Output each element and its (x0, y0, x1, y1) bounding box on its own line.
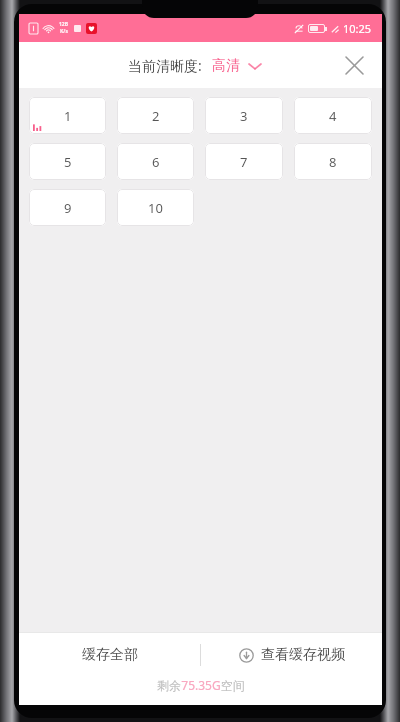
staticText: 查看缓存视频 (261, 646, 345, 664)
staticText: 高清 (212, 57, 240, 75)
staticText: 1 (64, 107, 72, 125)
button[interactable]: 1 (29, 97, 106, 134)
button[interactable]: 7 (205, 143, 283, 180)
staticText: 2 (152, 107, 160, 125)
button[interactable]: 4 (294, 97, 372, 134)
staticText: 5 (64, 153, 72, 171)
button[interactable]: 查看缓存视频 (201, 633, 382, 677)
button[interactable]: 5 (29, 143, 106, 180)
staticText: 缓存全部 (82, 646, 138, 664)
staticText: 6 (152, 153, 160, 171)
staticText: 当前清晰度: (128, 56, 202, 75)
button[interactable]: 缓存全部 (19, 633, 200, 677)
button[interactable]: 2 (117, 97, 194, 134)
button[interactable]: 当前清晰度: (122, 52, 267, 79)
staticText: 8 (329, 153, 337, 171)
button[interactable]: Close (334, 45, 374, 85)
button[interactable]: 8 (294, 143, 372, 180)
staticText: 10 (148, 199, 163, 217)
button[interactable]: 9 (29, 189, 106, 226)
staticText: 4 (329, 107, 337, 125)
button[interactable]: 3 (205, 97, 283, 134)
staticText: 10:25 (343, 21, 372, 36)
button[interactable]: 10 (117, 189, 194, 226)
staticText: 7 (240, 153, 248, 171)
staticText: 剩余75.35G空间 (157, 677, 245, 693)
staticText: 12B (59, 21, 69, 28)
staticText: 3 (240, 107, 248, 125)
button[interactable]: 6 (117, 143, 194, 180)
staticText: K/s (60, 28, 68, 35)
staticText: 9 (64, 199, 72, 217)
